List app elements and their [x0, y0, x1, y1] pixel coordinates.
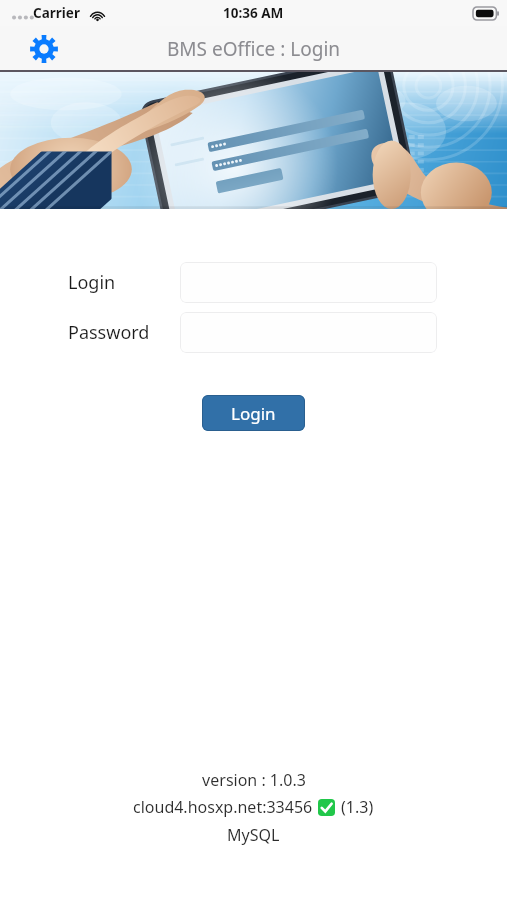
staticText: BMS eOffice : Login: [167, 36, 341, 62]
button[interactable]: Login: [202, 395, 305, 431]
staticText: cloud4.hosxp.net:33456: [133, 796, 313, 818]
button[interactable]: Settings: [18, 26, 70, 72]
staticText: version : 1.0.3: [202, 769, 306, 791]
staticText: 10:36 AM: [223, 4, 284, 22]
staticText: Carrier: [33, 4, 80, 22]
staticText: Password: [68, 320, 150, 345]
staticText: MySQL: [227, 824, 280, 846]
button[interactable]: Password field: [180, 312, 437, 353]
staticText: Login: [68, 270, 116, 295]
staticText: Login: [231, 402, 276, 425]
staticText: (1.3): [341, 796, 374, 818]
button[interactable]: Login field: [180, 262, 437, 303]
